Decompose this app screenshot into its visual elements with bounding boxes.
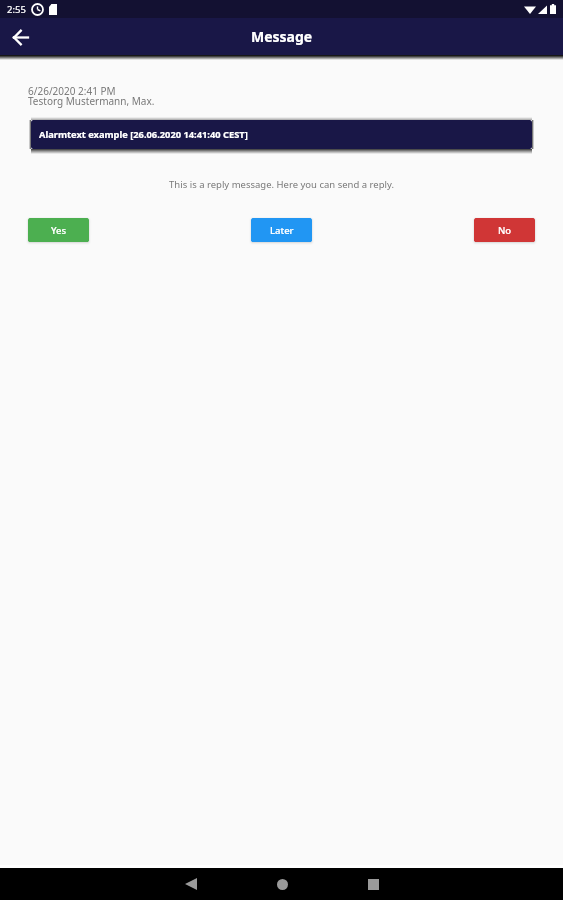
button[interactable]: No xyxy=(474,218,535,242)
button[interactable]: Yes xyxy=(28,218,89,242)
button[interactable]: Back xyxy=(5,22,35,52)
button[interactable]: Back xyxy=(168,868,214,900)
staticText: Later xyxy=(270,224,294,237)
staticText: Alarmtext example [26.06.2020 14:41:40 C… xyxy=(39,128,248,141)
staticText: 2:55 xyxy=(7,3,26,16)
button[interactable]: Later xyxy=(251,218,312,242)
button[interactable]: Home xyxy=(259,868,305,900)
staticText: No xyxy=(498,224,512,237)
staticText: Yes xyxy=(51,224,67,237)
button[interactable]: Recent apps xyxy=(350,868,396,900)
staticText: 6/26/2020 2:41 PM Testorg Mustermann, Ma… xyxy=(28,84,155,108)
staticText: This is a reply message. Here you can se… xyxy=(0,178,563,191)
staticText: Message xyxy=(251,27,313,46)
